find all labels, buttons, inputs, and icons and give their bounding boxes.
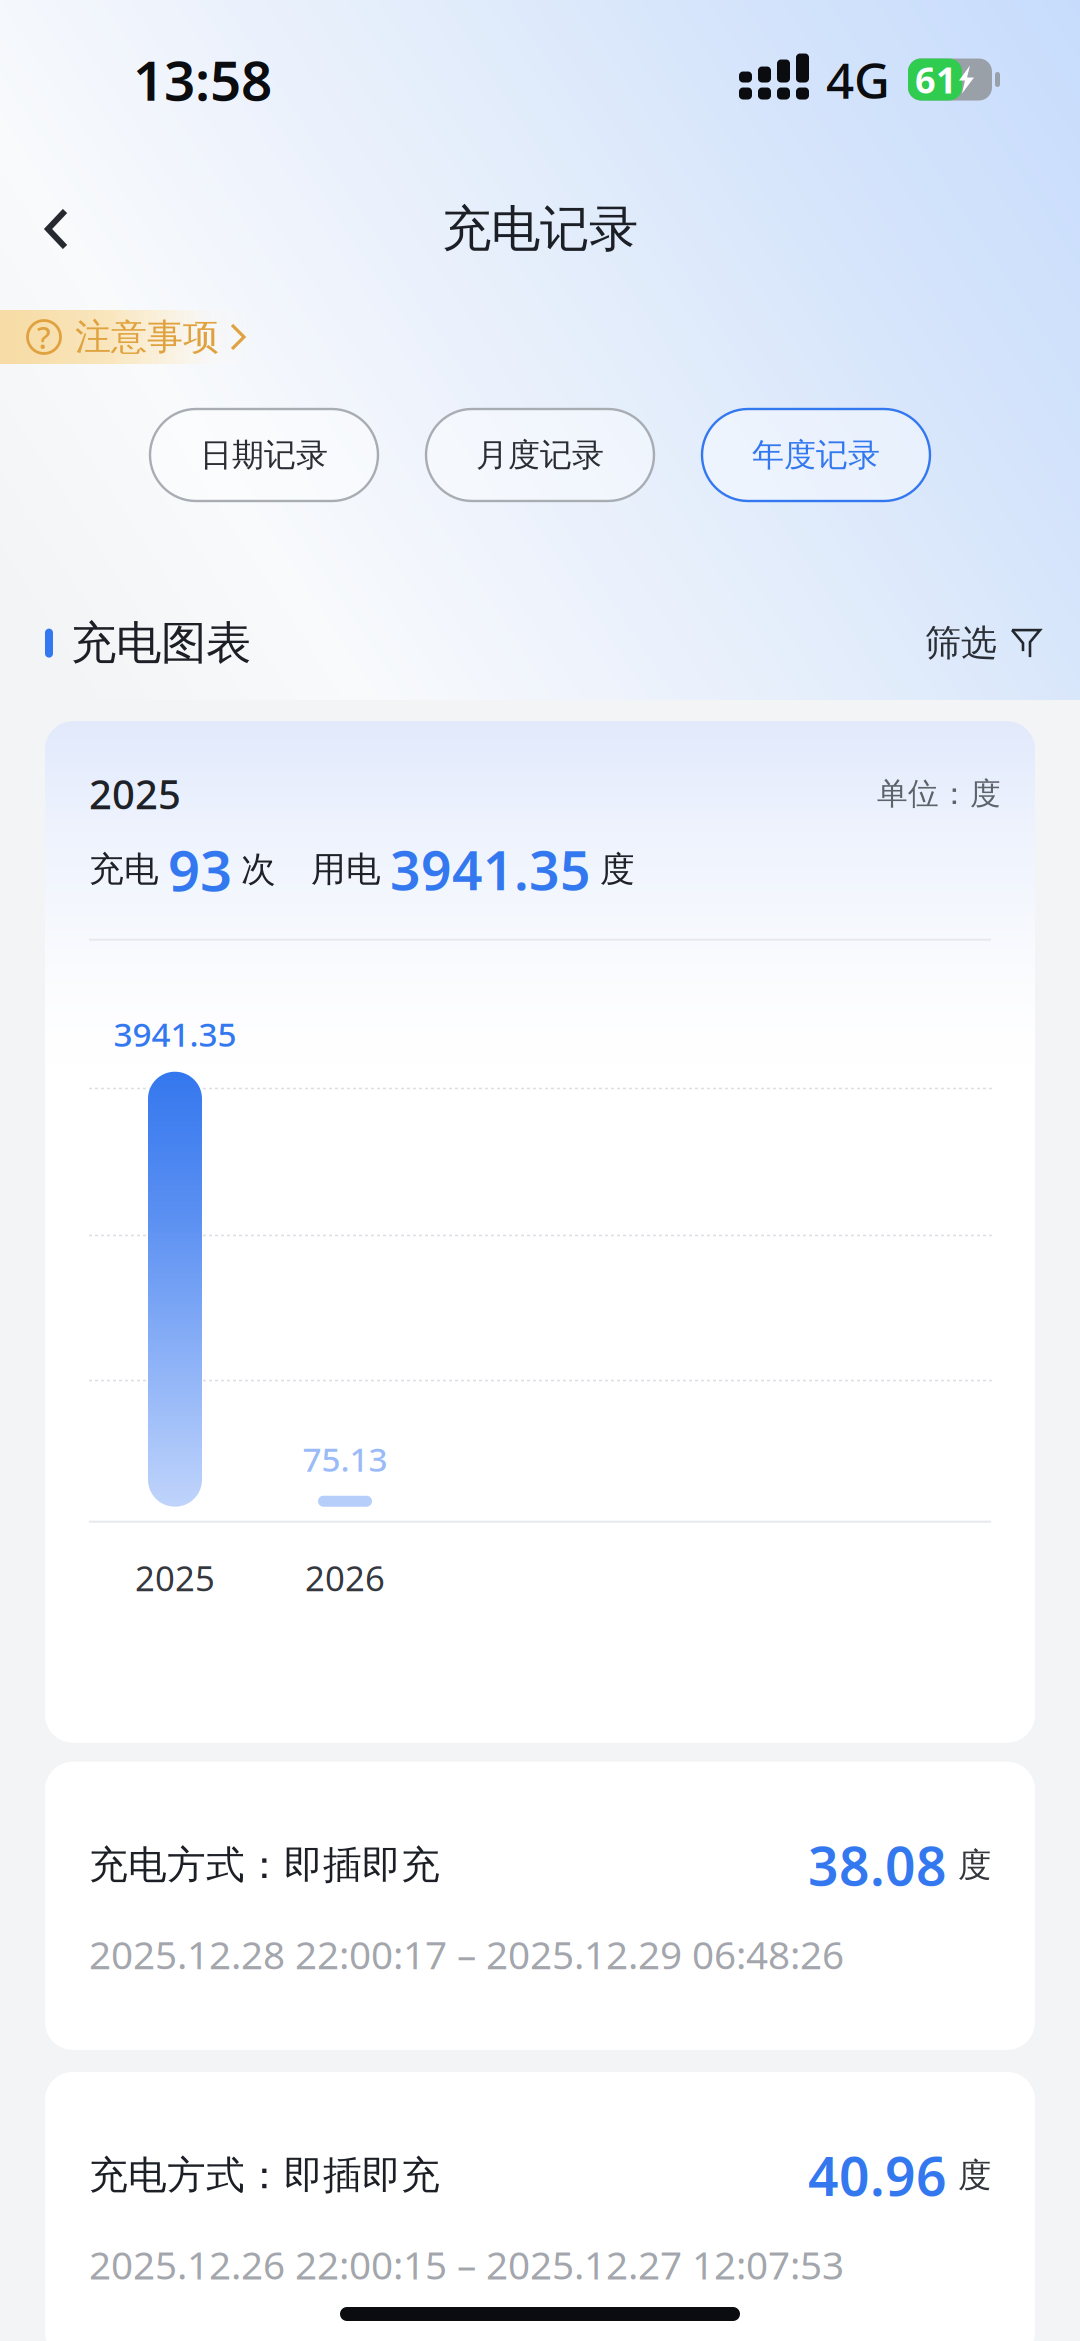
- staticText: 2025: [135, 1555, 215, 1601]
- staticText: 充电方式：即插即充: [89, 1841, 440, 1889]
- staticText: 用电: [311, 848, 381, 891]
- staticText: 13:58: [133, 43, 272, 116]
- staticText: 注意事项: [75, 315, 219, 359]
- button[interactable]: 日期记录: [150, 409, 378, 501]
- staticText: 度: [958, 1845, 991, 1885]
- staticText: 度: [958, 2155, 991, 2196]
- button[interactable]: 充电方式：即插即充: [45, 1762, 1035, 2050]
- button[interactable]: 充电方式：即插即充: [45, 2072, 1035, 2341]
- staticText: 2025: [89, 767, 181, 820]
- button[interactable]: 月度记录: [426, 409, 654, 501]
- button[interactable]: 筛选: [925, 611, 1035, 675]
- staticText: 2026: [305, 1555, 385, 1601]
- staticText: 3941.35: [113, 1012, 236, 1056]
- staticText: 月度记录: [476, 435, 604, 475]
- staticText: 单位：度: [877, 775, 1001, 813]
- staticText: 75.13: [302, 1437, 387, 1481]
- staticText: 2025.12.26 22:00:15 – 2025.12.27 12:07:5…: [89, 2239, 844, 2290]
- staticText: 年度记录: [752, 435, 880, 475]
- staticText: 充电记录: [442, 199, 638, 259]
- staticText: 40.96: [808, 2140, 947, 2211]
- staticText: 次: [241, 848, 276, 891]
- staticText: 充电方式：即插即充: [89, 2151, 440, 2199]
- button[interactable]: 返回: [0, 183, 115, 275]
- staticText: 日期记录: [200, 435, 328, 475]
- staticText: 充电图表: [71, 615, 251, 671]
- staticText: 度: [600, 848, 635, 891]
- staticText: 61: [915, 56, 957, 103]
- staticText: ?: [37, 317, 51, 357]
- button[interactable]: ?: [0, 310, 300, 364]
- staticText: 筛选: [925, 621, 997, 665]
- staticText: 3941.35: [390, 834, 591, 905]
- staticText: 充电: [89, 848, 159, 891]
- staticText: 4G: [826, 47, 890, 112]
- staticText: 2025.12.28 22:00:17 – 2025.12.29 06:48:2…: [89, 1928, 844, 1980]
- staticText: 38.08: [808, 1830, 947, 1900]
- button[interactable]: 年度记录: [702, 409, 930, 501]
- staticText: 93: [168, 832, 232, 907]
